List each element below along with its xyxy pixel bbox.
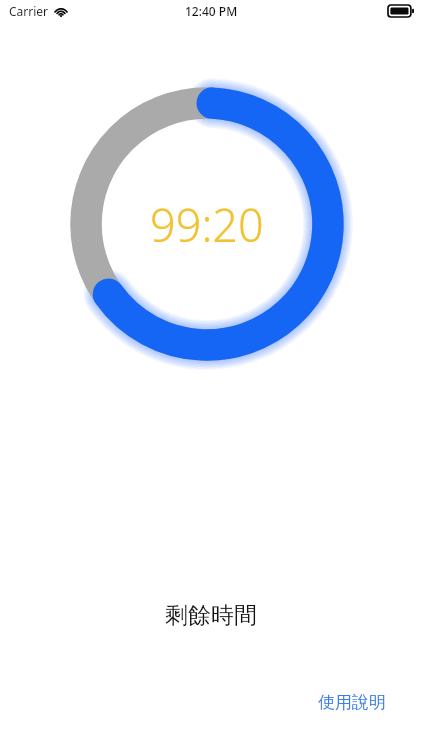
staticText: 剩餘時間: [0, 601, 422, 630]
staticText: Carrier: [9, 3, 49, 19]
button[interactable]: 使用說明: [300, 688, 422, 717]
staticText: 12:40 PM: [185, 3, 238, 19]
staticText: 99:20: [150, 194, 264, 255]
